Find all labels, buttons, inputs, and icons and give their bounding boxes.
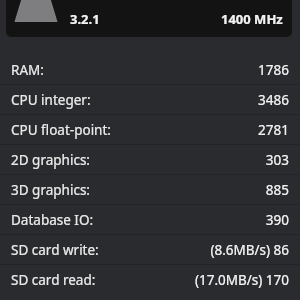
button[interactable]: 3D graphics: [0, 175, 300, 205]
staticText: 3486 [258, 91, 289, 109]
staticText: (8.6MB/s) 86 [210, 241, 289, 259]
button[interactable]: Database IO: [0, 205, 300, 235]
staticText: 2781 [258, 121, 289, 139]
staticText: 303 [265, 151, 289, 169]
staticText: (17.0MB/s) 170 [194, 271, 289, 289]
staticText: 885 [265, 181, 289, 199]
staticText: CPU float-point: [11, 121, 111, 139]
button[interactable]: CPU float-point: [0, 115, 300, 145]
other: App logo [14, 6, 58, 32]
button[interactable]: SD card write: [0, 235, 300, 265]
button[interactable]: SD card read: [0, 265, 300, 294]
staticText: 1786 [258, 61, 289, 79]
staticText: CPU integer: [11, 91, 91, 109]
staticText: 390 [265, 211, 289, 229]
staticText: SD card read: [11, 271, 96, 289]
staticText: Database IO: [11, 211, 94, 229]
staticText: 1400 MHz [221, 10, 283, 28]
staticText: SD card write: [11, 241, 99, 259]
staticText: 3D graphics: [11, 181, 90, 199]
button[interactable]: CPU integer: [0, 85, 300, 115]
staticText: RAM: [11, 61, 44, 79]
staticText: 3.2.1 [70, 10, 100, 28]
button[interactable]: RAM: [0, 55, 300, 85]
staticText: 2D graphics: [11, 151, 90, 169]
button[interactable]: 2D graphics: [0, 145, 300, 175]
button[interactable]: App logo [6, 0, 292, 37]
